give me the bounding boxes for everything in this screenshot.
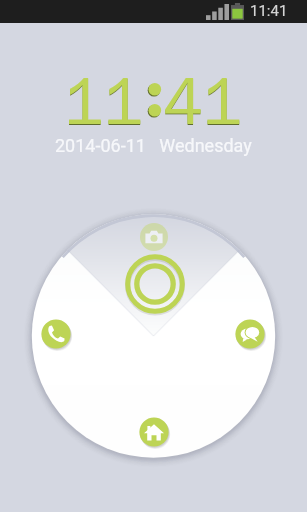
button[interactable]: Messages [235,319,265,349]
staticText: 11:41 [250,2,288,20]
button[interactable]: Unlock [123,252,187,316]
button[interactable]: Phone [41,319,71,349]
staticText: 2014-06-11 Wednesday [55,135,252,156]
other: Signal strength [206,4,229,20]
button[interactable]: Camera [140,223,168,251]
other: Battery [231,3,244,20]
staticText: 11:41 [64,61,243,144]
staticText: 11:41 [64,60,243,143]
button[interactable]: Home [139,417,169,447]
